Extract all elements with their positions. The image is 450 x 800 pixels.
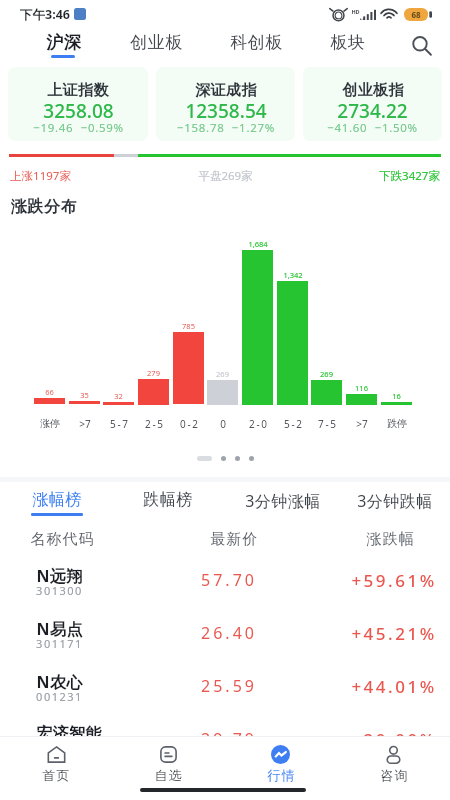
staticText: −158.78 −1.27% — [177, 120, 275, 136]
button[interactable]: 3分钟跌幅 — [350, 486, 440, 522]
staticText: 1,342 — [283, 270, 303, 280]
button[interactable]: N农心 — [0, 664, 450, 717]
staticText: 12358.54 — [185, 98, 267, 124]
staticText: 科创板 — [230, 32, 283, 53]
button[interactable]: 宏济智能 — [0, 717, 450, 770]
staticText: HD — [351, 8, 360, 15]
staticText: 咨询 — [380, 767, 408, 783]
staticText: 0 — [220, 417, 226, 431]
button[interactable]: 3分钟涨幅 — [238, 486, 328, 522]
staticText: 269 — [216, 369, 229, 379]
staticText: 1,684 — [248, 239, 268, 249]
staticText: 上证指数 — [47, 81, 109, 100]
staticText: 创业板指 — [342, 81, 404, 100]
staticText: 2 - 0 — [249, 417, 267, 431]
staticText: 深证成指 — [195, 81, 257, 100]
button[interactable]: Search — [403, 30, 439, 60]
staticText: 最新价 — [210, 530, 258, 549]
staticText: 301300 — [36, 583, 83, 598]
staticText: −19.46 −0.59% — [33, 120, 124, 136]
button[interactable]: 科创板 — [223, 30, 289, 60]
staticText: 2 - 5 — [145, 417, 163, 431]
staticText: 宏济智能 — [36, 724, 102, 744]
staticText: 5 - 7 — [110, 417, 128, 431]
staticText: 涨跌幅 — [366, 530, 414, 549]
staticText: 301296 — [36, 742, 83, 757]
staticText: 涨跌分布 — [10, 197, 78, 217]
staticText: 自选 — [154, 767, 182, 783]
staticText: N农心 — [36, 671, 83, 693]
staticText: >7 — [79, 417, 91, 431]
staticText: 涨幅榜 — [32, 490, 82, 510]
button[interactable]: 跌幅榜 — [138, 486, 198, 522]
staticText: 行情 — [267, 767, 295, 783]
button[interactable]: 行情 — [224, 741, 337, 789]
staticText: 名称代码 — [30, 530, 94, 549]
staticText: +44.01% — [351, 675, 437, 698]
staticText: 沪深 — [46, 32, 81, 53]
staticText: 57.70 — [201, 569, 257, 591]
staticText: +59.61% — [351, 569, 437, 592]
staticText: 平盘269家 — [198, 168, 253, 184]
staticText: 下午3:46 — [20, 6, 70, 23]
staticText: +20.00% — [351, 728, 437, 751]
button[interactable]: 上证指数 — [8, 67, 148, 141]
staticText: 279 — [147, 368, 160, 378]
staticText: 上涨1197家 — [10, 168, 71, 184]
button[interactable]: N远翔 — [0, 558, 450, 611]
staticText: >7 — [356, 417, 368, 431]
staticText: 首页 — [42, 767, 70, 783]
staticText: 3分钟涨幅 — [245, 490, 321, 512]
staticText: 7 - 5 — [318, 417, 336, 431]
button[interactable]: 板块 — [322, 30, 372, 60]
button[interactable]: 创业板 — [123, 30, 189, 60]
staticText: 3分钟跌幅 — [357, 490, 433, 512]
staticText: 0 - 2 — [180, 417, 198, 431]
staticText: 29.79 — [201, 728, 257, 750]
button[interactable]: 创业板指 — [303, 67, 442, 141]
staticText: N远翔 — [36, 565, 83, 587]
staticText: 66 — [45, 387, 54, 397]
button[interactable]: 深证成指 — [156, 67, 295, 141]
staticText: N易点 — [36, 618, 83, 640]
button[interactable]: 沪深 — [38, 30, 88, 60]
staticText: 跌停 — [387, 417, 407, 430]
button[interactable]: 自选 — [112, 741, 224, 789]
staticText: 下跌3427家 — [379, 168, 440, 184]
staticText: 116 — [355, 383, 368, 393]
staticText: +45.21% — [351, 622, 437, 645]
staticText: 3258.08 — [43, 98, 114, 124]
staticText: 16 — [392, 391, 401, 401]
staticText: 301171 — [36, 636, 83, 651]
button[interactable]: N易点 — [0, 611, 450, 664]
staticText: 创业板 — [130, 32, 183, 53]
button[interactable]: 首页 — [0, 741, 112, 789]
staticText: 25.59 — [201, 675, 257, 697]
staticText: 5 - 2 — [284, 417, 302, 431]
staticText: 001231 — [36, 689, 83, 704]
button[interactable]: 咨询 — [337, 741, 450, 789]
button[interactable]: 涨幅榜 — [27, 486, 87, 522]
staticText: 26.40 — [201, 622, 257, 644]
staticText: 板块 — [330, 32, 365, 53]
staticText: 涨停 — [40, 417, 60, 430]
staticText: 68 — [411, 9, 421, 20]
staticText: 35 — [80, 390, 89, 400]
staticText: 2734.22 — [337, 98, 408, 124]
staticText: 785 — [182, 321, 195, 331]
staticText: 跌幅榜 — [143, 490, 193, 510]
staticText: 32 — [114, 391, 123, 401]
staticText: −41.60 −1.50% — [327, 120, 418, 136]
staticText: 269 — [320, 369, 333, 379]
